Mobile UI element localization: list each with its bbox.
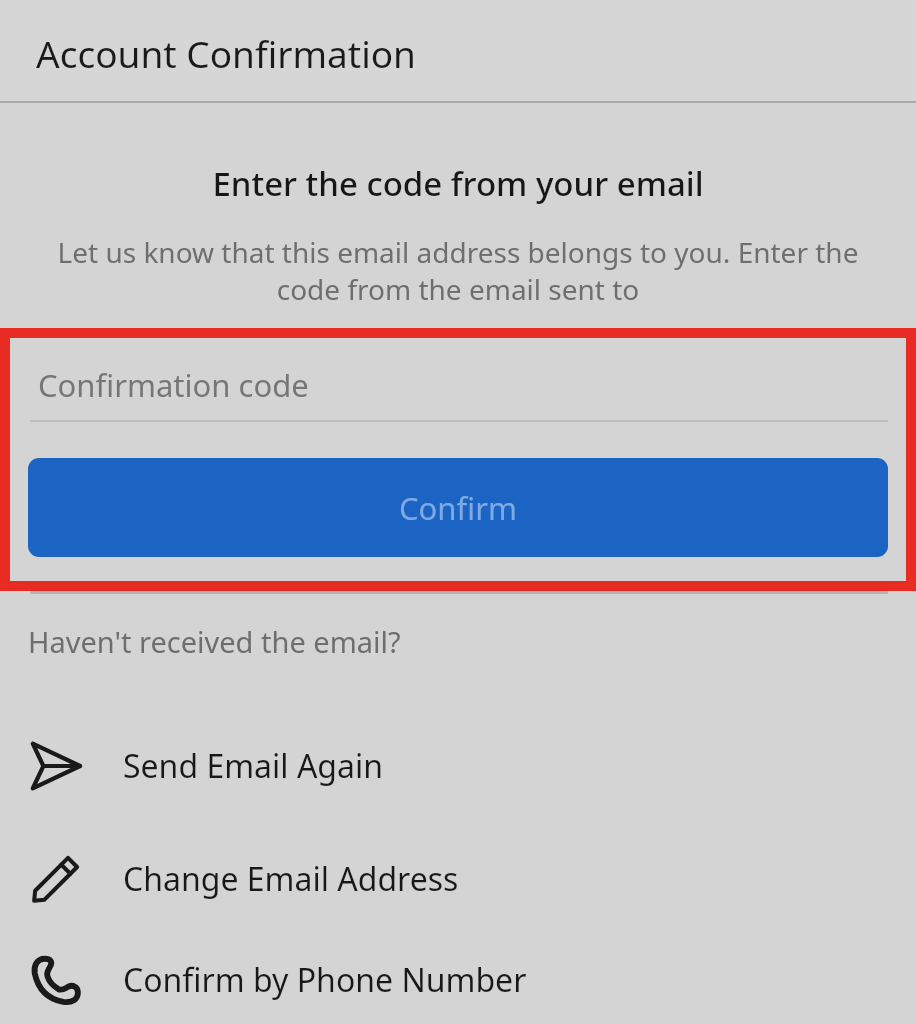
button[interactable]: Confirmation code bbox=[30, 356, 888, 422]
other: Send Email Again bbox=[26, 736, 86, 796]
staticText: Change Email Address bbox=[123, 857, 459, 901]
staticText: Haven't received the email? bbox=[28, 622, 401, 661]
staticText: Account Confirmation bbox=[36, 28, 416, 78]
other: Change Email Address bbox=[26, 849, 86, 909]
staticText: Confirm bbox=[399, 487, 517, 529]
staticText: Send Email Again bbox=[123, 744, 384, 788]
staticText: Let us know that this email address belo… bbox=[24, 233, 892, 308]
button[interactable]: Confirm by Phone Number bbox=[0, 935, 916, 1024]
button[interactable]: Change Email Address bbox=[0, 822, 916, 935]
button[interactable]: Confirm bbox=[28, 458, 888, 557]
staticText: Confirm by Phone Number bbox=[123, 958, 527, 1002]
staticText: Confirmation code bbox=[38, 364, 309, 406]
button[interactable]: Send Email Again bbox=[0, 709, 916, 822]
other: Confirm by Phone Number bbox=[26, 950, 86, 1010]
staticText: Enter the code from your email bbox=[0, 161, 916, 206]
